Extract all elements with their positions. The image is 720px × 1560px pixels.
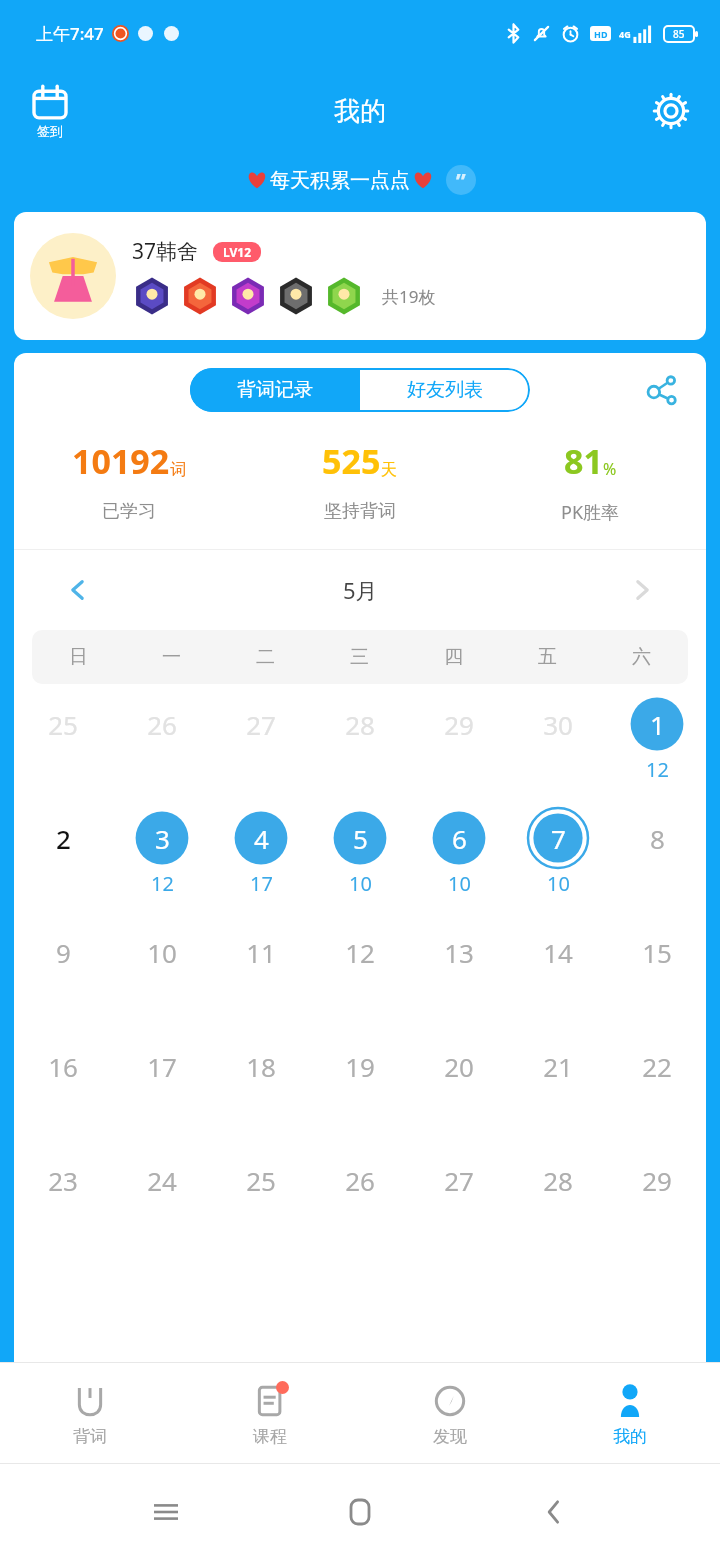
staticText: 29 [444,707,474,742]
button[interactable]: 10192 [14,438,244,523]
button[interactable]: 25 [14,684,112,798]
button[interactable]: 25 [211,1140,310,1254]
staticText: 3 [155,821,170,856]
button[interactable]: 1 [607,684,706,798]
button[interactable]: 27 [409,1140,508,1254]
button[interactable]: 背词记录 [190,368,360,412]
button[interactable]: 我的 [540,1363,720,1463]
staticText: 10 [349,870,372,897]
button[interactable]: 20 [409,1026,508,1140]
staticText: 37韩舍 [132,237,199,266]
staticText: 一 [162,645,181,669]
staticText: 525 [322,438,381,484]
staticText: 我的 [334,95,386,128]
button[interactable]: Share [640,368,684,412]
staticText: 19 [345,1049,375,1084]
button[interactable]: 28 [310,684,409,798]
staticText: 10 [547,870,570,897]
staticText: 每天积累一点点 [270,168,410,193]
button[interactable]: 37韩舍 [14,212,706,340]
button[interactable]: 15 [607,912,706,1026]
button[interactable]: 22 [607,1026,706,1140]
button[interactable]: Settings [648,88,694,134]
button[interactable]: 21 [508,1026,607,1140]
staticText: 13 [444,935,474,970]
button[interactable]: 29 [409,684,508,798]
button[interactable]: 3 [112,798,211,912]
button[interactable]: 签到 [28,82,72,141]
button[interactable]: 6 [409,798,508,912]
button[interactable]: 28 [508,1140,607,1254]
staticText: 10192 [72,438,170,484]
button[interactable]: 发现 [360,1363,540,1463]
button[interactable]: 11 [211,912,310,1026]
button[interactable]: Home [332,1484,388,1540]
staticText: PK胜率 [561,500,620,525]
staticText: 85 [673,27,685,41]
button[interactable]: 24 [112,1140,211,1254]
staticText: 五 [538,645,557,669]
button[interactable]: 12 [310,912,409,1026]
staticText: 28 [345,707,375,742]
staticText: 6 [452,821,467,856]
staticText: HD [594,28,608,40]
button[interactable]: 10 [112,912,211,1026]
button[interactable]: Quote [446,165,476,195]
button[interactable]: 14 [508,912,607,1026]
button[interactable]: 29 [607,1140,706,1254]
staticText: 三 [350,645,369,669]
staticText: 12 [345,935,375,970]
staticText: 24 [147,1163,177,1198]
staticText: 30 [543,707,573,742]
staticText: 四 [444,645,463,669]
button[interactable]: 13 [409,912,508,1026]
button[interactable]: 7 [508,798,607,912]
button[interactable]: 26 [112,684,211,798]
staticText: 20 [444,1049,474,1084]
staticText: 签到 [37,123,63,139]
staticText: 2 [56,821,71,856]
button[interactable]: Previous month [58,570,98,610]
staticText: 5月 [343,575,378,605]
staticText: 17 [250,870,273,897]
staticText: 上午7:47 [36,22,104,45]
staticText: 9 [56,935,71,970]
staticText: 天 [381,460,397,480]
staticText: 29 [642,1163,672,1198]
staticText: 坚持背词 [324,500,396,523]
button[interactable]: 背词 [0,1363,180,1463]
button[interactable]: 26 [310,1140,409,1254]
staticText: 已学习 [102,500,156,523]
button[interactable]: 19 [310,1026,409,1140]
staticText: 17 [147,1049,177,1084]
button[interactable]: 81 [475,438,706,525]
button[interactable]: 好友列表 [360,368,530,412]
button[interactable]: 18 [211,1026,310,1140]
staticText: 共19枚 [382,285,436,308]
button[interactable]: Next month [622,570,662,610]
staticText: 18 [246,1049,276,1084]
button[interactable]: Back [526,1484,582,1540]
staticText: 26 [345,1163,375,1198]
button[interactable]: 课程 [180,1363,360,1463]
button[interactable]: 17 [112,1026,211,1140]
button[interactable]: 16 [14,1026,112,1140]
staticText: ” [456,165,466,195]
staticText: 二 [256,645,275,669]
button[interactable]: 5 [310,798,409,912]
button[interactable]: 23 [14,1140,112,1254]
staticText: 1 [650,707,665,742]
button[interactable]: 2 [14,798,112,912]
button[interactable]: 27 [211,684,310,798]
button[interactable]: 525 [244,438,475,523]
staticText: 22 [642,1049,672,1084]
staticText: 11 [246,935,276,970]
button[interactable]: 4 [211,798,310,912]
button[interactable]: Recents [138,1484,194,1540]
button[interactable]: 8 [607,798,706,912]
staticText: 25 [246,1163,276,1198]
staticText: 课程 [253,1426,287,1447]
staticText: 10 [147,935,177,970]
button[interactable]: 30 [508,684,607,798]
button[interactable]: 9 [14,912,112,1026]
